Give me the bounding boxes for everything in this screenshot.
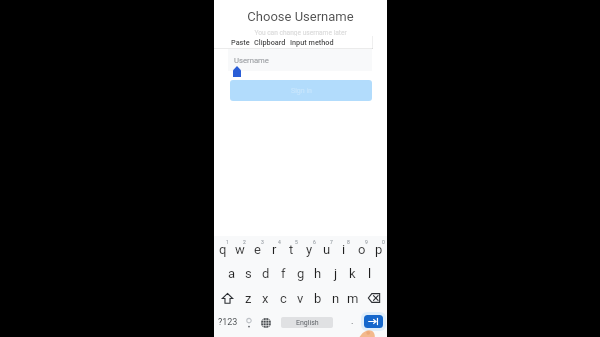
staticText: g	[297, 266, 305, 281]
button[interactable]: 3	[249, 236, 266, 260]
staticText: d	[262, 266, 270, 281]
staticText: p	[375, 242, 383, 257]
staticText: English	[296, 319, 319, 327]
button[interactable]: 6	[301, 236, 318, 260]
button[interactable]: 9	[353, 236, 370, 260]
button[interactable]: .	[345, 311, 359, 334]
button[interactable]: Sign in	[230, 80, 372, 101]
staticText: r	[272, 242, 277, 257]
button[interactable]: j	[327, 261, 344, 285]
staticText: 3	[261, 239, 264, 245]
staticText: k	[349, 266, 356, 281]
staticText: 7	[330, 239, 333, 245]
staticText: Sign in	[291, 87, 312, 95]
button[interactable]: 5	[283, 236, 300, 260]
button[interactable]: x	[257, 286, 274, 310]
button[interactable]: Paste	[230, 38, 251, 47]
button[interactable]: l	[361, 261, 378, 285]
button[interactable]: Enter	[364, 315, 383, 328]
staticText: 9	[365, 239, 368, 245]
staticText: e	[254, 242, 261, 257]
staticText: Username	[234, 56, 269, 65]
button[interactable]: z	[240, 286, 257, 310]
staticText: q	[219, 242, 227, 257]
button[interactable]: s	[240, 261, 257, 285]
button[interactable]: 4	[266, 236, 283, 260]
staticText: m	[347, 291, 359, 306]
staticText: 2	[243, 239, 246, 245]
staticText: .	[351, 316, 354, 327]
button[interactable]: 8	[335, 236, 352, 260]
staticText: Choose Username	[214, 9, 387, 24]
staticText: 0	[382, 239, 385, 245]
staticText: b	[314, 291, 322, 306]
staticText: l	[368, 266, 372, 281]
button[interactable]: Switch language	[256, 311, 276, 334]
button[interactable]: English	[281, 317, 333, 328]
staticText: t	[289, 242, 294, 257]
button[interactable]: k	[344, 261, 361, 285]
staticText: You can change username later	[214, 29, 387, 37]
staticText: Clipboard	[254, 38, 286, 47]
staticText: 6	[313, 239, 316, 245]
button[interactable]: Shift	[214, 286, 240, 310]
staticText: a	[228, 266, 236, 281]
staticText: i	[342, 242, 346, 257]
button[interactable]: a	[223, 261, 240, 285]
button[interactable]: 2	[231, 236, 248, 260]
staticText: Paste	[231, 38, 250, 47]
staticText: 4	[278, 239, 281, 245]
staticText: f	[281, 266, 286, 281]
button[interactable]: Backspace	[361, 286, 387, 310]
button[interactable]: m	[344, 286, 361, 310]
button[interactable]: Input method	[289, 38, 335, 47]
button[interactable]: d	[257, 261, 274, 285]
staticText: h	[314, 266, 322, 281]
button[interactable]: 1	[214, 236, 231, 260]
staticText: o	[358, 242, 366, 257]
button[interactable]: v	[292, 286, 309, 310]
staticText: 1	[226, 239, 229, 245]
staticText: j	[334, 266, 338, 281]
staticText: n	[332, 291, 340, 306]
staticText: ?123	[218, 317, 238, 328]
staticText: w	[235, 242, 245, 257]
button[interactable]: Emoji	[242, 311, 256, 334]
staticText: 8	[347, 239, 350, 245]
button[interactable]: 7	[318, 236, 335, 260]
staticText: c	[280, 291, 287, 306]
staticText: y	[306, 242, 313, 257]
button[interactable]: f	[275, 261, 292, 285]
button[interactable]: g	[292, 261, 309, 285]
button[interactable]: h	[309, 261, 326, 285]
button[interactable]: b	[309, 286, 326, 310]
button[interactable]: 0	[370, 236, 387, 260]
button[interactable]: ?123	[215, 311, 241, 334]
staticText: u	[323, 242, 331, 257]
staticText: s	[245, 266, 252, 281]
staticText: v	[297, 291, 304, 306]
button[interactable]: n	[327, 286, 344, 310]
staticText: x	[262, 291, 269, 306]
button[interactable]: c	[275, 286, 292, 310]
staticText: z	[245, 291, 252, 306]
button[interactable]: Clipboard	[253, 38, 287, 47]
staticText: 5	[295, 239, 298, 245]
button[interactable]: Username	[228, 49, 372, 71]
staticText: Input method	[290, 38, 334, 47]
